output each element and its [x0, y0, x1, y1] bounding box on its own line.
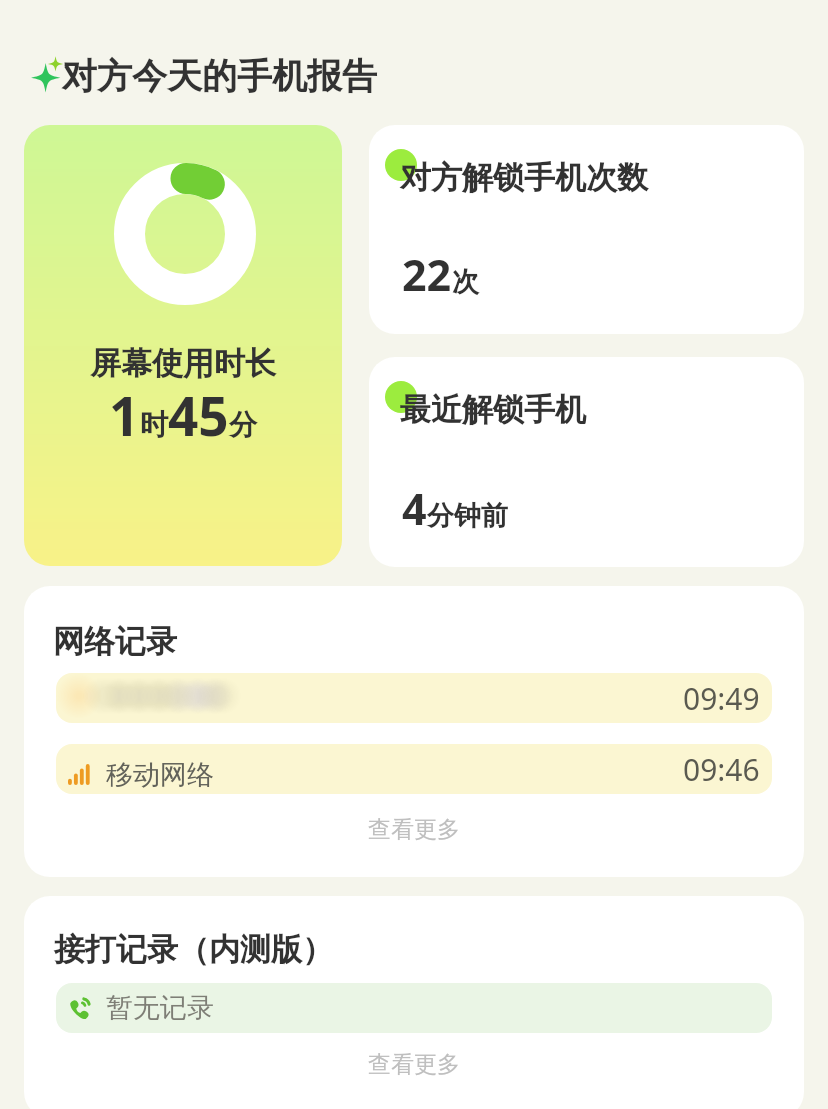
staticText: 屏幕使用时长 — [90, 344, 276, 383]
staticText: 22 — [402, 245, 452, 304]
staticText: 时 — [140, 407, 168, 442]
staticText: 09:46 — [683, 749, 760, 790]
staticText: 对方今天的手机报告 — [62, 54, 377, 98]
staticText: 45 — [168, 379, 229, 451]
staticText: 暂无记录 — [106, 991, 214, 1025]
button[interactable]: 查看更多 — [24, 1044, 804, 1084]
staticText: 分钟前 — [427, 499, 508, 533]
button[interactable]: 隐藏的网络记录 09:49 — [56, 673, 772, 723]
button[interactable]: 屏幕使用时长 — [24, 125, 342, 566]
staticText: 1 — [109, 379, 140, 451]
staticText: 分 — [229, 407, 257, 442]
staticText: 查看更多 — [368, 815, 460, 844]
button[interactable]: 移动网络 — [56, 744, 772, 794]
button[interactable]: 暂无记录 — [56, 983, 772, 1033]
staticText: 09:49 — [683, 678, 760, 719]
button[interactable]: 最近解锁手机 — [369, 357, 804, 567]
button[interactable]: 查看更多 — [24, 809, 804, 849]
staticText: 对方解锁手机次数 — [400, 158, 648, 197]
staticText: 网络记录 — [53, 622, 177, 661]
button[interactable]: 对方解锁手机次数 — [369, 125, 804, 334]
staticText: 接打记录（内测版） — [54, 930, 333, 969]
staticText: 查看更多 — [368, 1050, 460, 1079]
staticText: 次 — [452, 265, 479, 299]
staticText: 最近解锁手机 — [400, 390, 586, 429]
staticText: 移动网络 — [106, 758, 214, 792]
staticText: 4 — [402, 479, 427, 538]
